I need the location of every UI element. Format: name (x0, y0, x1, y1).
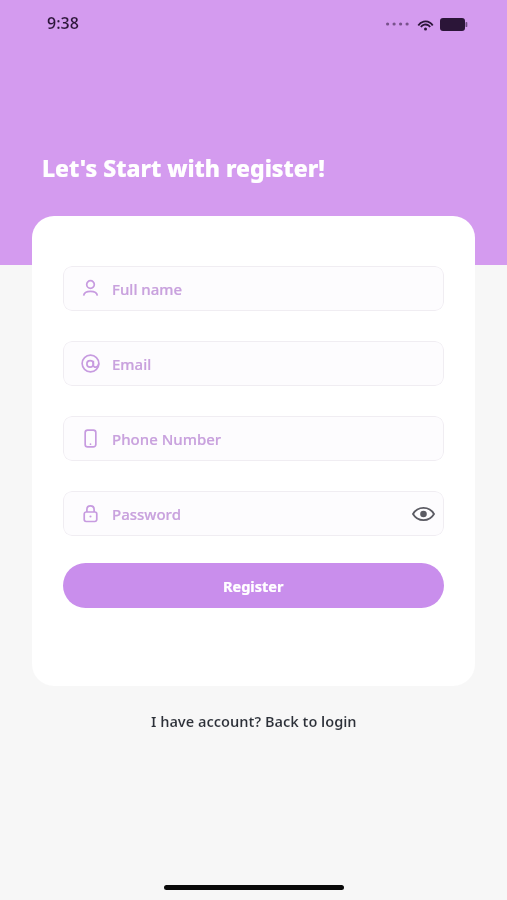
staticText: Password (112, 504, 181, 524)
button[interactable]: Phone Number (63, 416, 444, 461)
button[interactable]: Password (63, 491, 444, 536)
staticText: I have account? Back to login (151, 711, 357, 731)
button[interactable]: I have account? Back to login (0, 706, 507, 736)
staticText: Phone Number (112, 429, 222, 449)
staticText: Register (223, 576, 284, 596)
staticText: Full name (112, 279, 183, 299)
button[interactable]: Email (63, 341, 444, 386)
staticText: Let's Start with register! (42, 152, 325, 183)
button[interactable]: Show password (404, 495, 442, 533)
staticText: 9:38 (47, 12, 79, 34)
staticText: Email (112, 354, 152, 374)
button[interactable]: Full name (63, 266, 444, 311)
button[interactable]: Register (63, 563, 444, 608)
